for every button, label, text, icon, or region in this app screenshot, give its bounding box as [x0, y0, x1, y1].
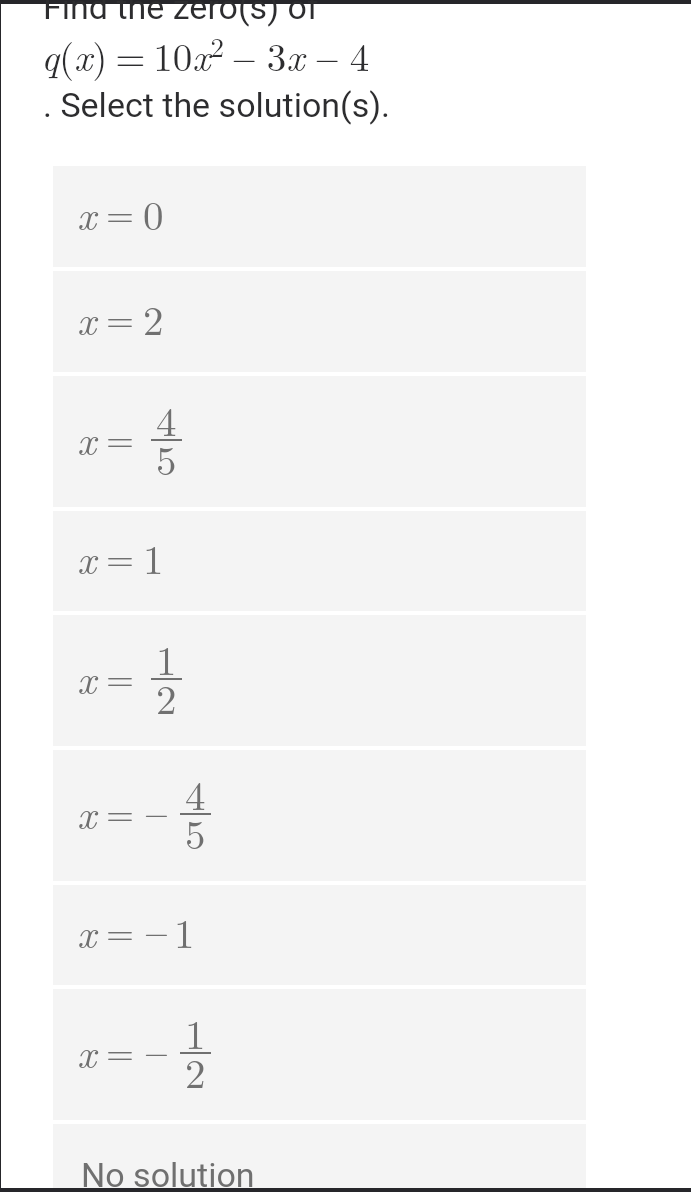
staticText: −	[144, 1027, 169, 1072]
staticText: No solution	[81, 1155, 255, 1192]
staticText: . Select the solution(s).	[43, 85, 391, 125]
staticText: −	[144, 788, 169, 833]
staticText: =	[106, 411, 135, 462]
staticText: 2	[185, 1042, 206, 1100]
button[interactable]: x	[53, 615, 586, 746]
button[interactable]: x	[53, 885, 586, 985]
staticText: 0	[143, 184, 164, 242]
staticText: 4	[185, 764, 206, 822]
button[interactable]: No solution	[53, 1124, 586, 1192]
staticText: =	[106, 186, 135, 237]
staticText: 5	[185, 803, 206, 861]
staticText: 2	[156, 668, 177, 726]
staticText: x	[77, 902, 97, 960]
staticText: x	[77, 528, 97, 586]
staticText: x	[77, 783, 97, 841]
button[interactable]: x	[53, 166, 586, 267]
staticText: =	[106, 530, 135, 581]
staticText: 1	[143, 528, 164, 586]
staticText: 2	[143, 289, 164, 347]
staticText: q(x) = 10x2 − 3x − 4	[41, 27, 370, 82]
button[interactable]: x	[53, 271, 586, 372]
staticText: =	[106, 650, 135, 701]
button[interactable]: x	[53, 376, 586, 507]
staticText: x	[77, 648, 97, 706]
staticText: x	[77, 409, 97, 467]
staticText: 4	[156, 390, 177, 448]
staticText: 5	[156, 429, 177, 487]
staticText: −	[144, 907, 169, 952]
staticText: 1	[185, 1003, 206, 1061]
staticText: x	[77, 1022, 97, 1080]
staticText: Find the zero(s) of	[43, 0, 319, 27]
staticText: x	[77, 184, 97, 242]
button[interactable]: x	[53, 511, 586, 611]
staticText: 1	[174, 902, 195, 960]
staticText: x	[77, 289, 97, 347]
staticText: =	[106, 291, 135, 342]
staticText: =	[106, 785, 135, 836]
button[interactable]: x	[53, 989, 586, 1120]
button[interactable]: x	[53, 750, 586, 881]
staticText: =	[106, 1024, 135, 1075]
staticText: =	[106, 904, 135, 955]
staticText: 1	[156, 629, 177, 687]
